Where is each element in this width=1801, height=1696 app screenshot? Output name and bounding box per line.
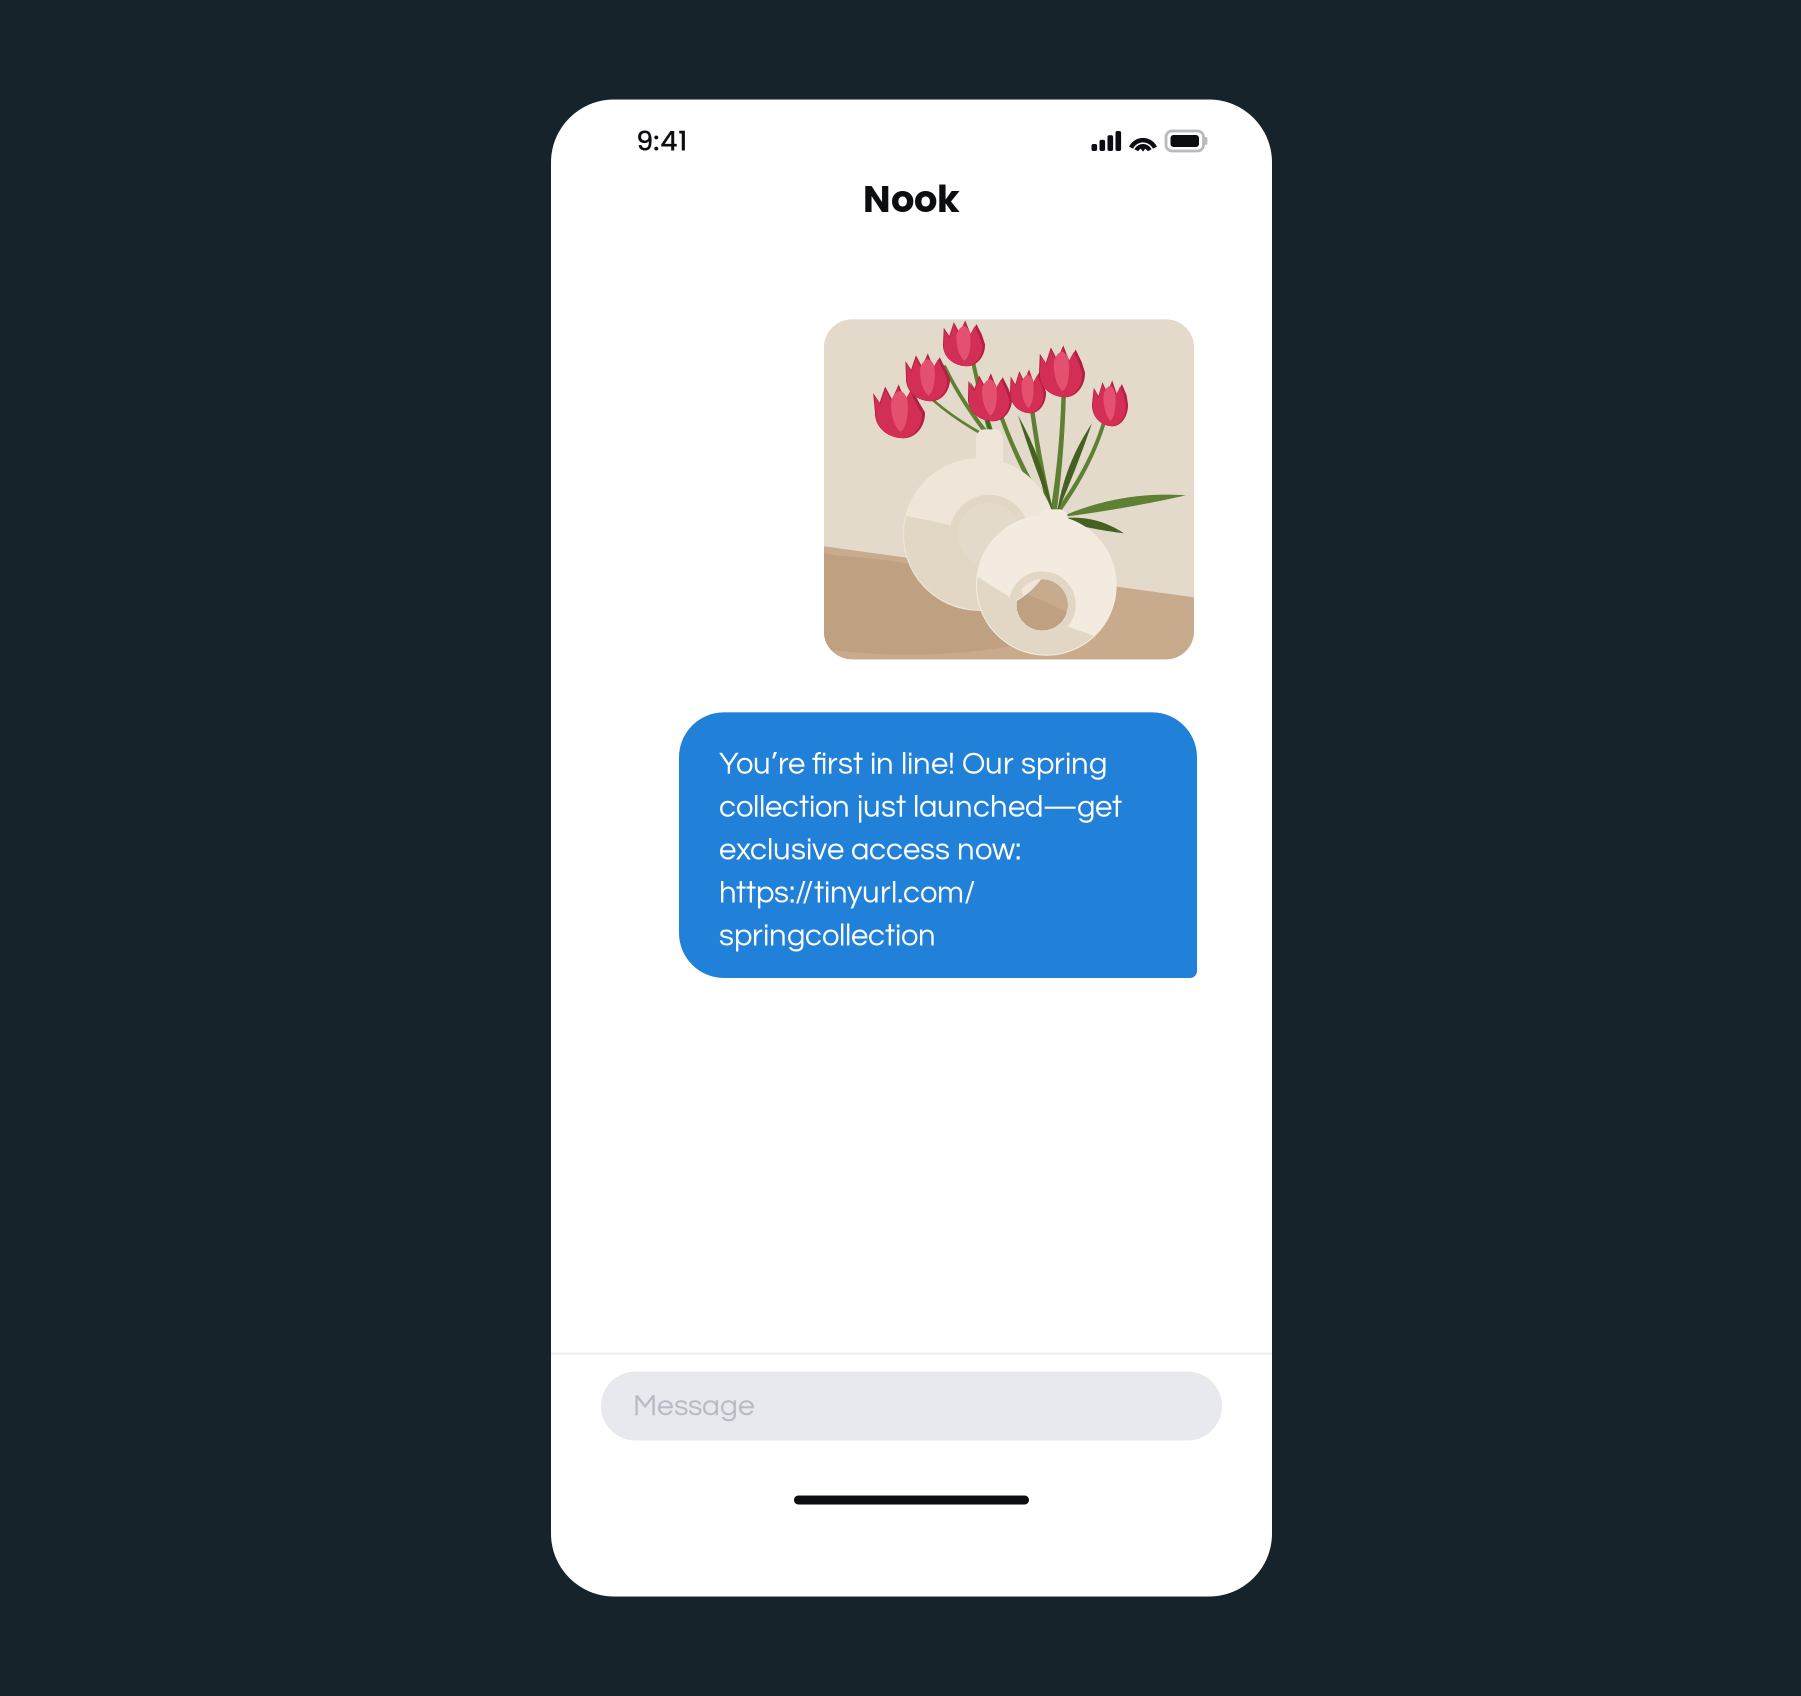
- button[interactable]: Message: [601, 1371, 1222, 1440]
- button[interactable]: Photo attachment: [824, 319, 1194, 659]
- staticText: Message: [633, 1391, 755, 1421]
- staticText: Nook: [863, 173, 960, 225]
- staticText: You’re first in line! Our spring collect…: [719, 748, 1122, 952]
- staticText: 9:41: [636, 122, 688, 160]
